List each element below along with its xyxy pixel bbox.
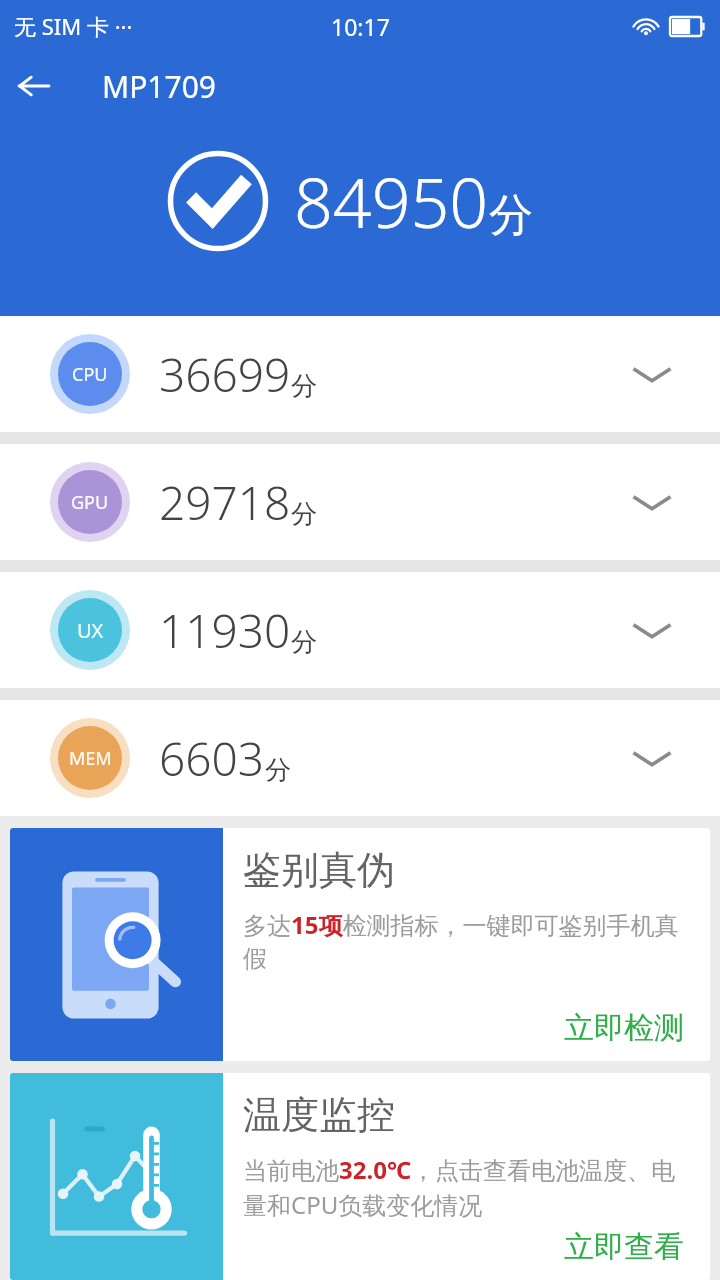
button[interactable]: GPU [0,444,720,560]
staticText: 立即检测 [564,1009,684,1047]
button[interactable]: Back [0,52,68,120]
staticText: 分 [291,626,317,659]
staticText: 6603 [159,727,265,790]
staticText: 84950 [294,155,489,248]
button[interactable]: MEM [0,700,720,816]
staticText: 温度监控 [243,1091,395,1139]
staticText: 当前电池32.0℃，点击查看电池温度、电量和CPU负载变化情况 [243,1153,696,1221]
staticText: 多达15项检测指标，一键即可鉴别手机真假 [243,908,696,975]
button[interactable]: Expand MEM [624,730,680,786]
button[interactable]: Expand GPU [624,474,680,530]
button[interactable]: CPU [0,316,720,432]
staticText: 分 [291,370,317,403]
staticText: GPU [71,490,109,515]
staticText: UX [77,617,104,644]
staticText: 鉴别真伪 [243,846,395,894]
staticText: 29718 [159,471,291,534]
button[interactable]: 鉴别真伪 [10,828,710,1061]
staticText: 36699 [159,343,291,406]
button[interactable]: Expand UX [624,602,680,658]
button[interactable]: UX [0,572,720,688]
button[interactable]: 温度监控 [10,1073,710,1280]
button[interactable]: Expand CPU [624,346,680,402]
staticText: 分 [265,754,291,787]
staticText: 无 SIM 卡 ··· [14,11,133,41]
staticText: CPU [72,362,108,387]
staticText: 11930 [159,599,291,662]
staticText: MP1709 [102,66,216,107]
staticText: MEM [69,746,112,771]
staticText: 分 [291,498,317,531]
staticText: 分 [489,188,533,243]
staticText: 10:17 [331,11,390,42]
staticText: 立即查看 [564,1228,684,1266]
